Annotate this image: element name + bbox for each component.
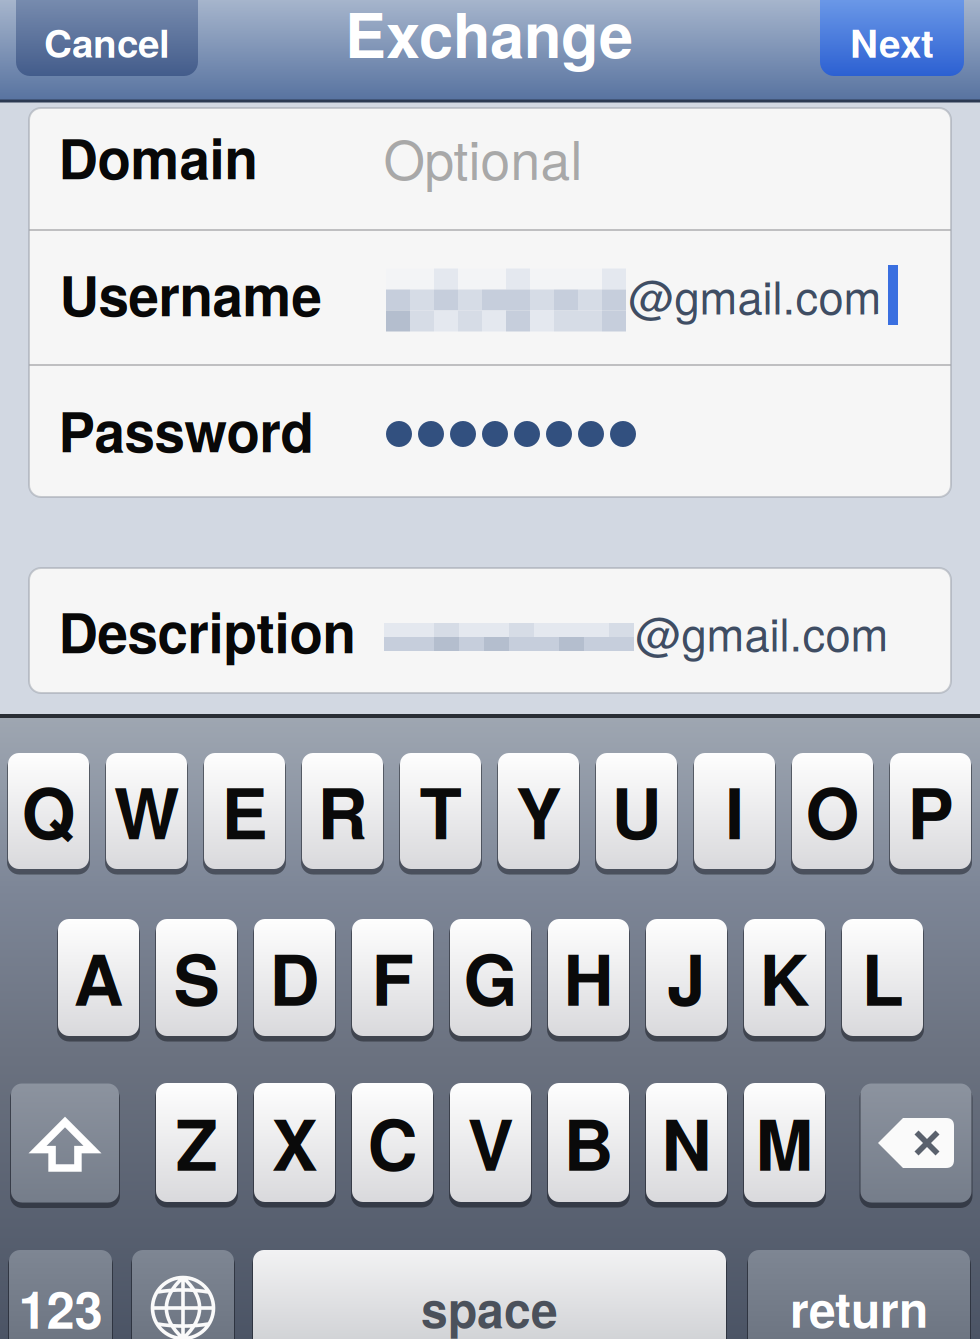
staticText: Optional: [383, 119, 582, 195]
button[interactable]: Password: [29, 366, 951, 497]
button[interactable]: Domain: [29, 108, 951, 229]
button[interactable]: A: [56, 915, 141, 1040]
staticText: Exchange: [345, 0, 633, 77]
button[interactable]: C: [350, 1079, 435, 1206]
button[interactable]: N: [644, 1079, 729, 1206]
staticText: D: [269, 928, 319, 1027]
staticText: A: [73, 928, 123, 1027]
button[interactable]: X: [252, 1079, 337, 1206]
staticText: R: [317, 761, 367, 861]
staticText: U: [611, 761, 661, 861]
button[interactable]: W: [104, 749, 189, 873]
staticText: Z: [175, 1093, 217, 1192]
staticText: M: [755, 1093, 813, 1192]
staticText: O: [805, 761, 859, 861]
staticText: X: [271, 1093, 317, 1192]
button[interactable]: Q: [6, 749, 91, 873]
staticText: B: [563, 1093, 613, 1192]
staticText: return: [790, 1274, 928, 1339]
staticText: space: [421, 1274, 558, 1339]
staticText: N: [661, 1093, 711, 1192]
staticText: J: [667, 928, 706, 1027]
button[interactable]: Next: [820, 0, 964, 76]
staticText: I: [725, 761, 744, 861]
staticText: E: [221, 761, 267, 861]
staticText: Q: [21, 761, 75, 861]
button[interactable]: T: [398, 749, 483, 873]
staticText: P: [907, 761, 953, 861]
button[interactable]: O: [790, 749, 875, 873]
button[interactable]: Next keyboard: [130, 1246, 236, 1339]
button[interactable]: K: [742, 915, 827, 1040]
button[interactable]: S: [154, 915, 239, 1040]
button[interactable]: Z: [154, 1079, 239, 1206]
staticText: C: [367, 1093, 417, 1192]
staticText: V: [467, 1093, 513, 1192]
button[interactable]: return: [746, 1246, 972, 1339]
button[interactable]: space: [251, 1246, 728, 1339]
button[interactable]: E: [202, 749, 287, 873]
staticText: H: [563, 928, 613, 1027]
button[interactable]: M: [742, 1079, 827, 1206]
button[interactable]: Y: [496, 749, 581, 873]
staticText: L: [861, 928, 903, 1027]
staticText: Password: [58, 391, 313, 469]
button[interactable]: J: [644, 915, 729, 1040]
button[interactable]: I: [692, 749, 777, 873]
staticText: Y: [515, 761, 561, 861]
button[interactable]: V: [448, 1079, 533, 1206]
staticText: 123: [18, 1272, 102, 1339]
staticText: W: [114, 761, 179, 861]
staticText: @gmail.com: [635, 599, 888, 664]
button[interactable]: U: [594, 749, 679, 873]
button[interactable]: Username: [29, 231, 951, 364]
button[interactable]: H: [546, 915, 631, 1040]
button[interactable]: F: [350, 915, 435, 1040]
button[interactable]: G: [448, 915, 533, 1040]
button[interactable]: P: [888, 749, 973, 873]
staticText: F: [371, 928, 413, 1027]
staticText: G: [463, 928, 517, 1027]
staticText: Domain: [58, 118, 257, 196]
staticText: Cancel: [44, 14, 170, 70]
button[interactable]: Shift: [9, 1079, 121, 1206]
staticText: S: [173, 928, 219, 1027]
button[interactable]: Cancel: [16, 0, 198, 76]
staticText: Username: [59, 255, 321, 333]
button[interactable]: Delete: [858, 1079, 973, 1206]
button[interactable]: R: [300, 749, 385, 873]
staticText: K: [759, 928, 809, 1027]
staticText: Next: [850, 14, 934, 70]
button[interactable]: Description: [29, 568, 951, 693]
button[interactable]: L: [840, 915, 925, 1040]
button[interactable]: 123: [7, 1246, 114, 1339]
staticText: @gmail.com: [628, 262, 881, 327]
button[interactable]: B: [546, 1079, 631, 1206]
staticText: T: [419, 761, 461, 861]
button[interactable]: D: [252, 915, 337, 1040]
staticText: Description: [58, 592, 355, 670]
